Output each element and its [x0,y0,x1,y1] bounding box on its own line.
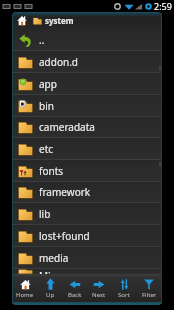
staticText: Sort [118,291,130,299]
staticText: framework [39,185,91,199]
staticText: 2:59 [154,0,172,12]
button[interactable]: cameradata [12,117,162,138]
staticText: etc [39,142,54,156]
staticText: media [39,251,69,265]
button[interactable]: addon.d [12,51,162,73]
button[interactable]: Sort [112,278,136,301]
button[interactable]: bin [12,95,162,117]
staticText: cameradata [39,120,95,134]
button[interactable]: .. [12,29,162,51]
staticText: lost+found [39,229,90,243]
staticText: Filter [142,291,157,299]
button[interactable]: lib [12,203,162,225]
button[interactable]: Back [63,278,87,301]
staticText: lib [39,207,51,221]
button[interactable]: Next [87,278,111,301]
button[interactable]: Mi [12,269,162,275]
staticText: app [39,77,57,91]
button[interactable]: app [12,73,162,95]
staticText: Next [92,291,106,299]
staticText: bin [39,99,54,113]
button[interactable]: fonts [12,160,162,182]
button[interactable]: media [12,247,162,269]
button[interactable]: framework [12,182,162,203]
button[interactable]: etc [12,138,162,160]
staticText: Back [68,291,82,299]
button[interactable]: lost+found [12,225,162,247]
staticText: Home [16,291,34,299]
staticText: .. [39,33,45,47]
button[interactable]: system [12,12,162,29]
button[interactable]: Up [38,278,62,301]
button[interactable]: Home [13,278,37,301]
button[interactable]: Filter [137,278,161,301]
staticText: system [45,15,74,26]
staticText: Up [46,291,55,299]
staticText: addon.d [39,55,78,69]
staticText: fonts [39,164,64,178]
staticText: Mi [39,269,51,274]
